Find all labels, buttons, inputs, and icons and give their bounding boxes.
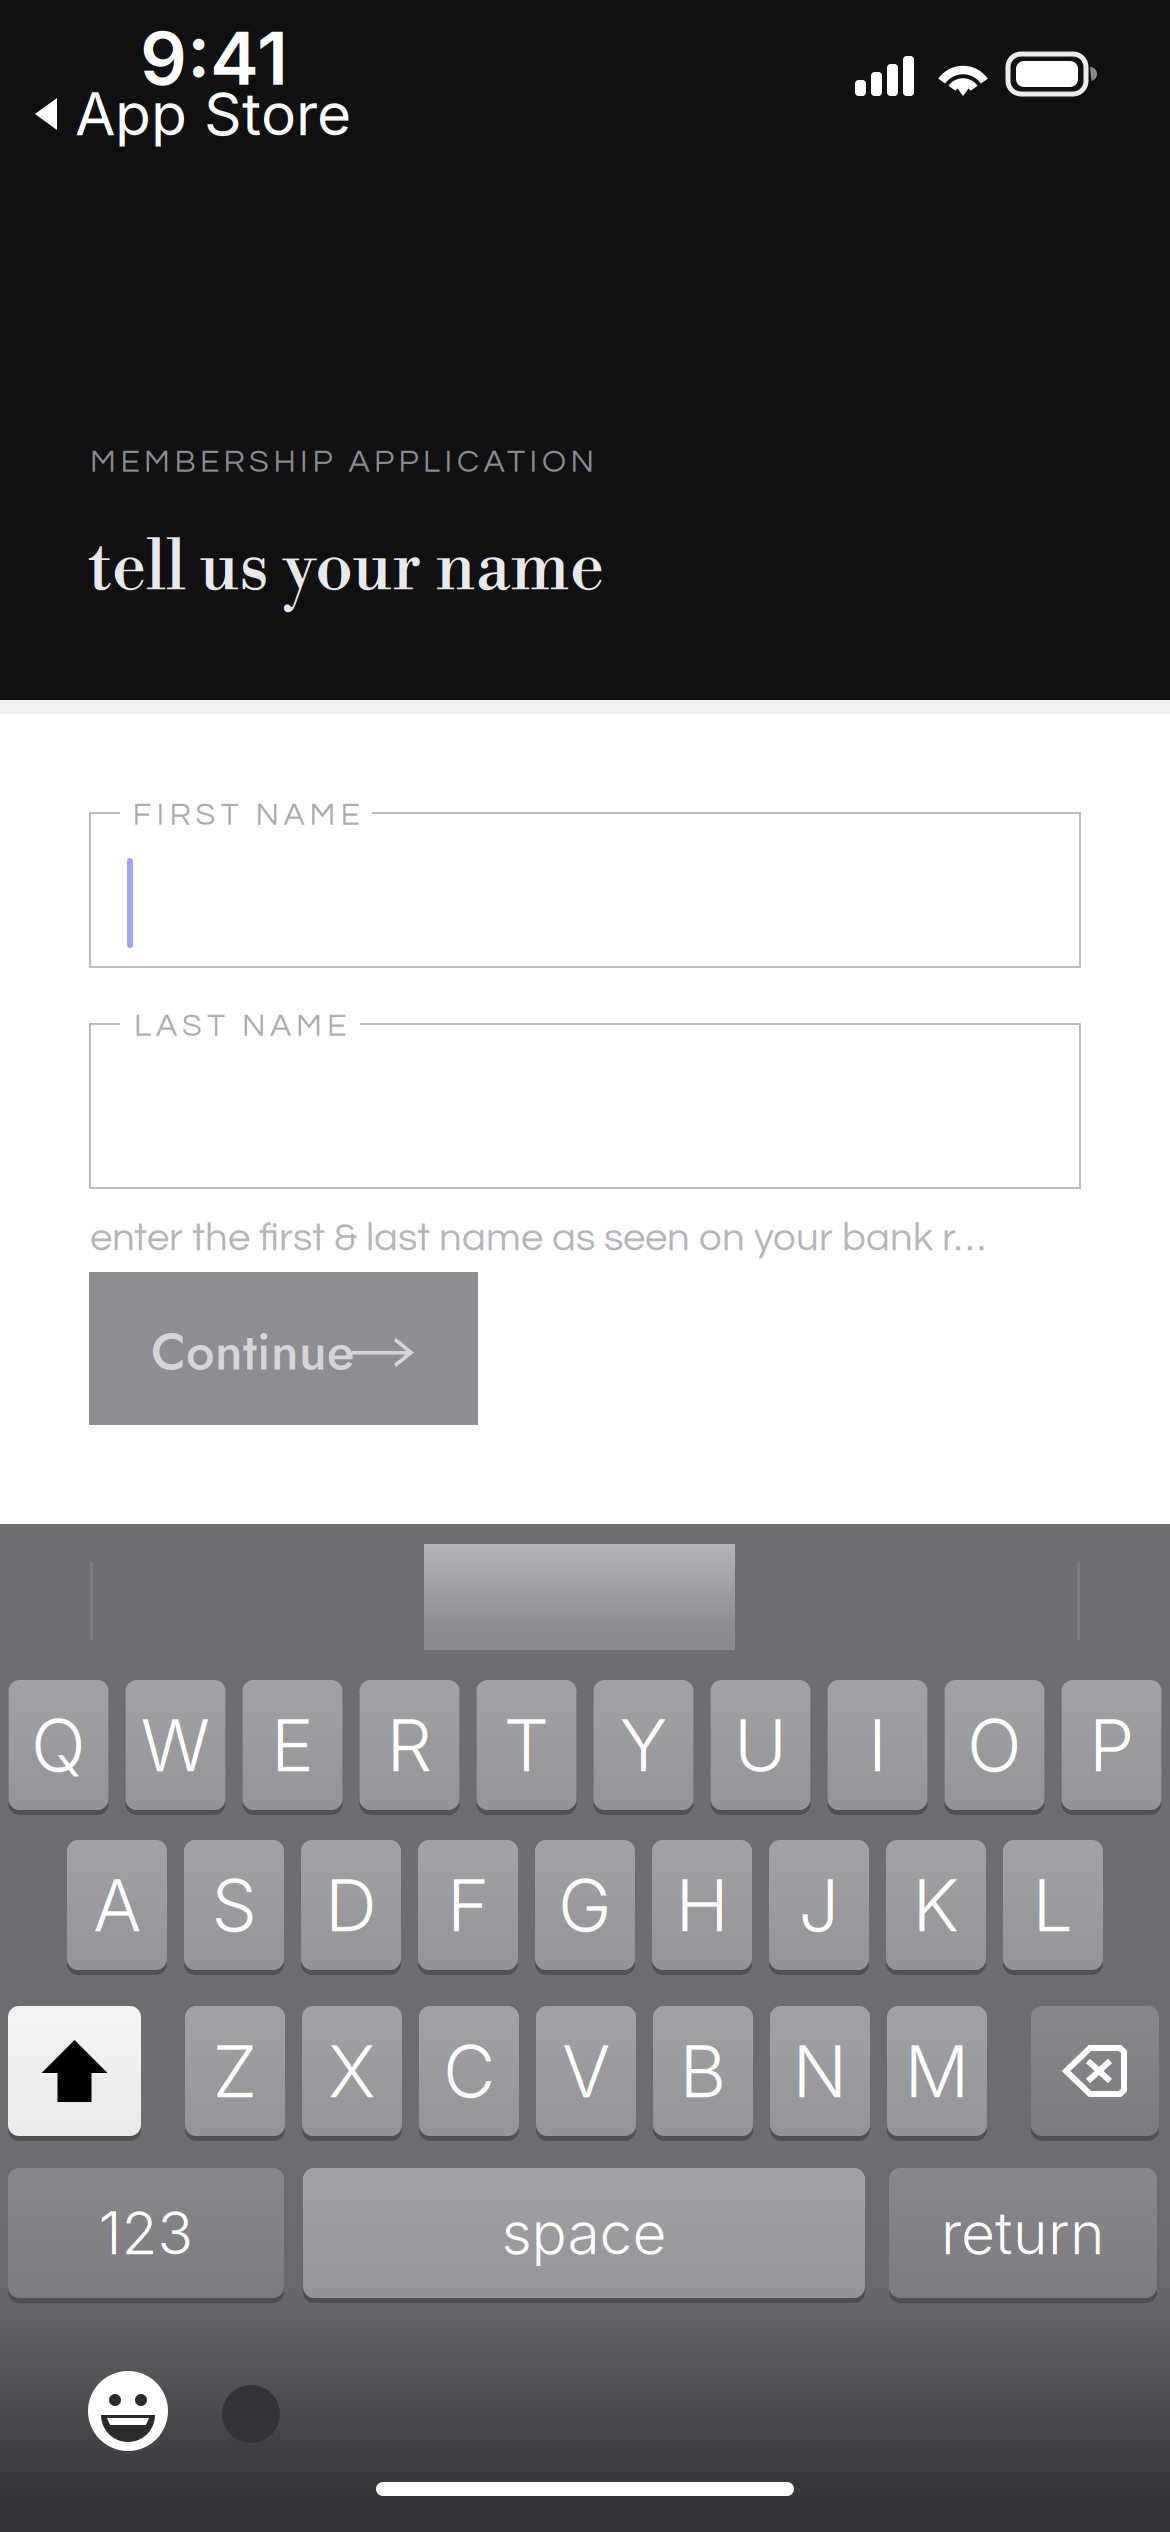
- button[interactable]: Back to App Store: [34, 86, 454, 142]
- button[interactable]: P: [1061, 1680, 1161, 1810]
- button[interactable]: O: [944, 1680, 1044, 1810]
- button[interactable]: I: [827, 1680, 927, 1810]
- button[interactable]: 123: [8, 2168, 284, 2298]
- button[interactable]: T: [476, 1680, 576, 1810]
- staticText: L: [1032, 1861, 1073, 1948]
- staticText: LAST NAME: [134, 1009, 346, 1042]
- staticText: I: [868, 1701, 887, 1788]
- button[interactable]: Shift: [8, 2006, 141, 2136]
- button[interactable]: N: [770, 2006, 870, 2136]
- button[interactable]: V: [536, 2006, 636, 2136]
- button[interactable]: LAST NAME: [90, 1024, 1080, 1188]
- button[interactable]: FIRST NAME: [90, 813, 1080, 967]
- button[interactable]: S: [184, 1840, 284, 1970]
- staticText: D: [325, 1861, 377, 1948]
- button[interactable]: M: [887, 2006, 987, 2136]
- button[interactable]: Z: [185, 2006, 285, 2136]
- button[interactable]: K: [886, 1840, 986, 1970]
- button[interactable]: A: [67, 1840, 167, 1970]
- staticText: H: [675, 1861, 728, 1948]
- staticText: X: [328, 2027, 376, 2114]
- button[interactable]: Emoji keyboard: [88, 2371, 168, 2451]
- staticText: Z: [212, 2027, 257, 2114]
- staticText: F: [447, 1861, 489, 1948]
- button[interactable]: Q: [8, 1680, 108, 1810]
- staticText: G: [558, 1861, 612, 1948]
- staticText: space: [501, 2197, 666, 2268]
- staticText: W: [140, 1701, 210, 1788]
- staticText: tell us your name: [88, 526, 604, 611]
- button[interactable]: B: [653, 2006, 753, 2136]
- staticText: S: [211, 1861, 256, 1948]
- staticText: Q: [31, 1701, 86, 1788]
- staticText: T: [503, 1701, 549, 1788]
- staticText: C: [443, 2027, 495, 2114]
- button[interactable]: space: [303, 2168, 865, 2298]
- staticText: Y: [619, 1701, 667, 1788]
- staticText: U: [734, 1701, 787, 1788]
- button[interactable]: C: [419, 2006, 519, 2136]
- button[interactable]: Dictation: [222, 2385, 280, 2443]
- button[interactable]: G: [535, 1840, 635, 1970]
- button[interactable]: Y: [593, 1680, 693, 1810]
- staticText: R: [386, 1701, 432, 1788]
- staticText: E: [271, 1701, 314, 1788]
- staticText: MEMBERSHIP APPLICATION: [90, 445, 593, 478]
- button[interactable]: J: [769, 1840, 869, 1970]
- staticText: K: [912, 1861, 959, 1948]
- button[interactable]: F: [418, 1840, 518, 1970]
- staticText: Continue: [151, 1315, 354, 1389]
- button[interactable]: Delete: [1031, 2006, 1159, 2136]
- button[interactable]: Continue: [89, 1272, 478, 1425]
- staticText: return: [941, 2197, 1105, 2268]
- staticText: B: [679, 2027, 726, 2114]
- staticText: O: [967, 1701, 1022, 1788]
- staticText: P: [1089, 1701, 1134, 1788]
- button[interactable]: L: [1003, 1840, 1103, 1970]
- staticText: M: [904, 2027, 969, 2114]
- staticText: 123: [98, 2197, 193, 2268]
- button[interactable]: W: [125, 1680, 225, 1810]
- button[interactable]: D: [301, 1840, 401, 1970]
- button[interactable]: U: [710, 1680, 810, 1810]
- button[interactable]: return: [889, 2168, 1157, 2298]
- staticText: 9:41: [140, 14, 288, 102]
- staticText: App Store: [75, 78, 351, 149]
- button[interactable]: X: [302, 2006, 402, 2136]
- staticText: enter the first & last name as seen on y…: [90, 1217, 985, 1259]
- staticText: J: [798, 1861, 839, 1948]
- staticText: N: [792, 2027, 847, 2114]
- staticText: V: [562, 2027, 610, 2114]
- staticText: A: [93, 1861, 141, 1948]
- staticText: FIRST NAME: [132, 798, 359, 831]
- button[interactable]: H: [652, 1840, 752, 1970]
- button[interactable]: E: [242, 1680, 342, 1810]
- button[interactable]: R: [359, 1680, 459, 1810]
